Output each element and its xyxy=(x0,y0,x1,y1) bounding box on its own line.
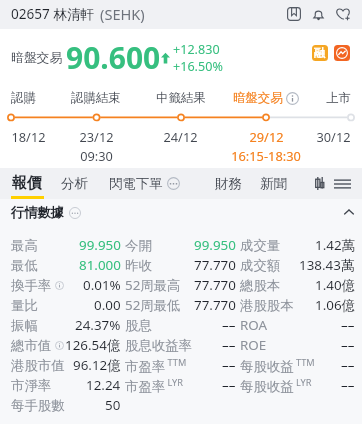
button[interactable]: Notifications xyxy=(307,3,329,25)
staticText: –– xyxy=(222,336,236,354)
button[interactable]: 換手率 xyxy=(11,275,125,295)
staticText: –– xyxy=(222,356,236,374)
staticText: 每手股數 xyxy=(11,397,65,414)
button[interactable]: 上市 xyxy=(326,90,351,106)
staticText: 30/12 xyxy=(316,128,351,145)
button[interactable]: Collapse xyxy=(339,202,359,222)
button[interactable]: 52周最低 xyxy=(125,295,240,315)
staticText: –– xyxy=(341,356,355,374)
button[interactable]: 市盈率 LYR xyxy=(125,375,240,395)
staticText: 77.770 xyxy=(194,256,236,274)
button[interactable]: 暗盤交易 xyxy=(233,90,299,106)
staticText: 港股股本 xyxy=(240,297,294,314)
button[interactable]: 今開 xyxy=(125,235,240,255)
staticText: 50 xyxy=(105,396,121,414)
staticText: 1.40億 xyxy=(315,276,355,294)
staticText: 報價 xyxy=(12,174,42,193)
staticText: 18/12 xyxy=(11,128,46,145)
button[interactable]: 行情數據 xyxy=(11,204,81,221)
button[interactable]: 市淨率 xyxy=(11,375,125,395)
staticText: –– xyxy=(222,316,236,334)
button[interactable]: 認購結束 xyxy=(71,90,121,106)
staticText: 16:15-18:30 xyxy=(231,147,301,164)
staticText: 0.01% xyxy=(83,276,121,294)
staticText: 中籤結果 xyxy=(156,90,206,106)
staticText: 市淨率 xyxy=(11,377,52,394)
button[interactable]: 分析 xyxy=(61,168,88,199)
staticText: 港股市值 xyxy=(11,357,65,374)
button[interactable]: Menu xyxy=(330,168,354,199)
staticText: 成交額 xyxy=(240,257,281,274)
button[interactable]: Add to watchlist xyxy=(332,3,354,25)
button[interactable]: 最低 xyxy=(11,255,125,275)
button[interactable]: ROE xyxy=(240,335,355,355)
staticText: (SEHK) xyxy=(100,4,145,24)
staticText: 股息 xyxy=(125,317,152,334)
staticText: 29/12 xyxy=(249,128,284,145)
button[interactable]: 量比 xyxy=(11,295,125,315)
staticText: 總股本 xyxy=(240,277,281,294)
button[interactable]: 每股收益 LYR xyxy=(240,375,355,395)
staticText: +12.830 xyxy=(173,41,220,58)
staticText: 成交量 xyxy=(240,237,281,254)
staticText: 股息收益率 xyxy=(125,337,192,354)
button[interactable]: 52周最高 xyxy=(125,275,240,295)
button[interactable]: 振幅 xyxy=(11,315,125,335)
button[interactable]: Margin trading xyxy=(312,45,328,61)
staticText: 暗盤交易 xyxy=(11,50,63,66)
staticText: 暗盤交易 xyxy=(233,90,283,106)
button[interactable]: 報價 xyxy=(12,168,42,199)
button[interactable]: 股息 xyxy=(125,315,240,335)
staticText: 最高 xyxy=(11,237,38,254)
button[interactable]: Bookmark xyxy=(283,3,305,25)
staticText: 0.00 xyxy=(94,296,121,314)
staticText: 24/12 xyxy=(163,128,198,145)
staticText: 52周最高 xyxy=(125,276,181,294)
staticText: 12.24 xyxy=(86,376,121,394)
staticText: 81.000 xyxy=(79,256,121,274)
button[interactable]: 新聞 xyxy=(260,168,287,199)
button[interactable]: 股息收益率 xyxy=(125,335,240,355)
staticText: 行情數據 xyxy=(11,204,64,221)
staticText: 分析 xyxy=(61,175,88,192)
staticText: 振幅 xyxy=(11,317,38,334)
button[interactable]: ROA xyxy=(240,315,355,335)
staticText: 上市 xyxy=(326,90,351,106)
staticText: 138.43萬 xyxy=(299,256,355,274)
button[interactable]: 財務 xyxy=(215,168,242,199)
staticText: 126.54億 xyxy=(65,336,121,354)
button[interactable]: 每股收益 TTM xyxy=(240,355,355,375)
button[interactable]: 市盈率 TTM xyxy=(125,355,240,375)
button[interactable]: 閃電下單 xyxy=(109,168,180,199)
button[interactable]: 中籤結果 xyxy=(156,90,206,106)
staticText: 99.950 xyxy=(79,236,121,254)
button[interactable]: 昨收 xyxy=(125,255,240,275)
button[interactable]: 最高 xyxy=(11,235,125,255)
button[interactable]: 成交量 xyxy=(240,235,355,255)
staticText: 23/12 xyxy=(79,128,114,145)
button[interactable]: Candlestick chart xyxy=(307,168,331,199)
button[interactable]: 總市值 xyxy=(11,335,125,355)
staticText: 90.600 xyxy=(66,37,161,78)
staticText: 1.42萬 xyxy=(315,236,355,254)
staticText: 財務 xyxy=(215,175,242,192)
button[interactable]: 港股股本 xyxy=(240,295,355,315)
staticText: 昨收 xyxy=(125,257,152,274)
button[interactable]: 每手股數 xyxy=(11,395,125,415)
staticText: –– xyxy=(222,376,236,394)
staticText: 市盈率 LYR xyxy=(125,376,184,395)
button[interactable]: 總股本 xyxy=(240,275,355,295)
staticText: 99.950 xyxy=(194,236,236,254)
staticText: 閃電下單 xyxy=(109,175,163,192)
button[interactable]: 成交額 xyxy=(240,255,355,275)
staticText: –– xyxy=(341,376,355,394)
button[interactable]: 港股市值 xyxy=(11,355,125,375)
staticText: 1.06億 xyxy=(315,296,355,314)
staticText: –– xyxy=(341,336,355,354)
staticText: 每股收益 LYR xyxy=(240,376,312,395)
button[interactable]: Chart xyxy=(334,45,350,61)
button[interactable]: 認購 xyxy=(11,90,36,106)
staticText: 77.770 xyxy=(194,296,236,314)
